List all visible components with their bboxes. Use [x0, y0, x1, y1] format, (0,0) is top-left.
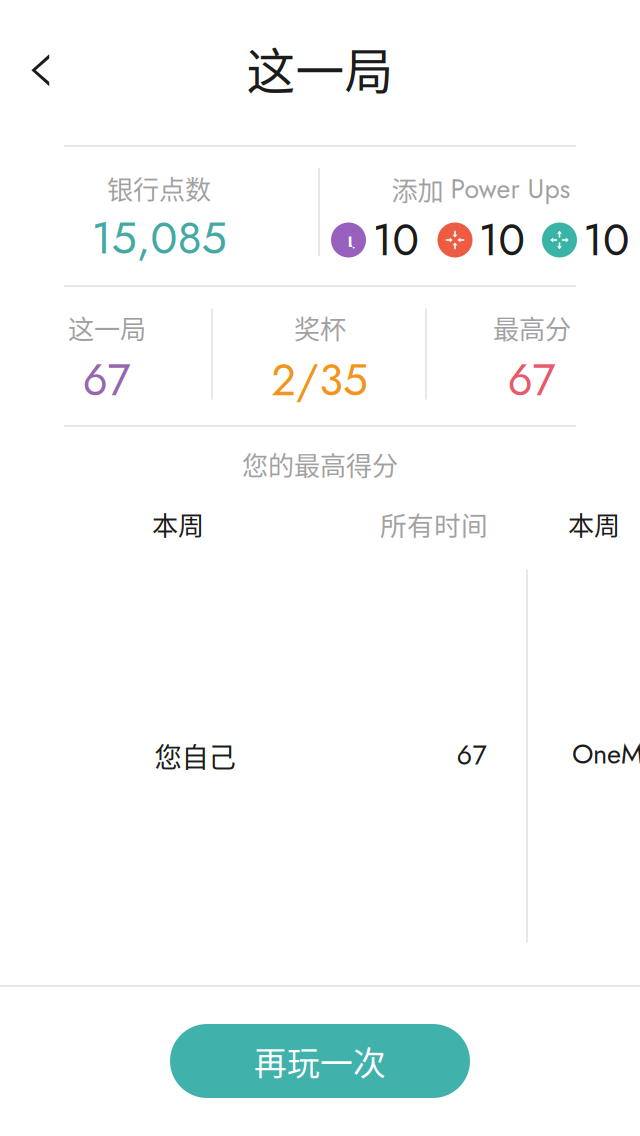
staticText: 所有时间	[380, 505, 488, 543]
staticText: 67	[507, 348, 555, 412]
staticText: 15,085	[91, 206, 226, 270]
staticText: 2/35	[271, 348, 368, 412]
button[interactable]: 您自己	[155, 723, 491, 787]
staticText: 这一局	[68, 309, 146, 346]
button[interactable]: 再玩一次	[170, 1024, 470, 1098]
staticText: 67	[82, 348, 130, 412]
staticText: 10	[583, 208, 629, 272]
staticText: 银行点数	[107, 169, 211, 207]
staticText: 添加	[391, 170, 443, 208]
staticText: 10	[478, 208, 524, 272]
staticText: 您的最高得分	[242, 445, 398, 483]
staticText: 本周	[152, 505, 204, 543]
staticText: 67	[456, 735, 486, 775]
button[interactable]: Back	[8, 38, 72, 102]
staticText: 最高分	[493, 309, 571, 346]
staticText: 这一局	[246, 33, 393, 103]
staticText: 再玩一次	[254, 1037, 386, 1085]
staticText: 您自己	[154, 736, 235, 775]
staticText: 奖杯	[294, 309, 346, 346]
staticText: 本周	[568, 505, 620, 543]
staticText: OneM	[572, 734, 640, 774]
staticText: 10	[372, 208, 418, 272]
staticText: Power Ups	[450, 170, 570, 208]
